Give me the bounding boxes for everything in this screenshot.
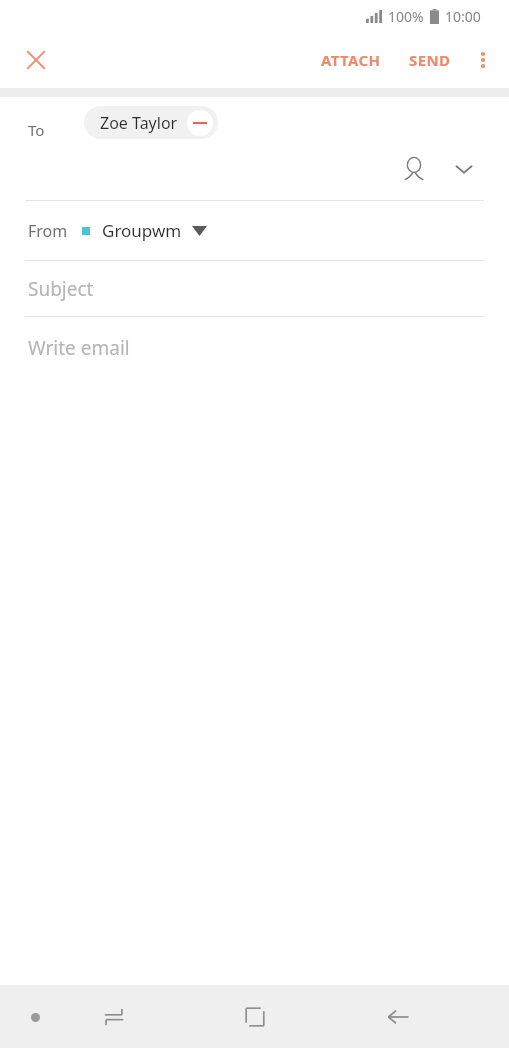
- button[interactable]: Recent apps: [88, 991, 140, 1043]
- staticText: ATTACH: [321, 50, 381, 70]
- staticText: Subject: [28, 276, 94, 302]
- staticText: From: [28, 220, 68, 242]
- staticText: Zoe Taylor: [100, 112, 178, 134]
- button[interactable]: Remove Zoe Taylor: [187, 110, 213, 136]
- button[interactable]: Expand recipients: [442, 147, 486, 191]
- button[interactable]: To: [0, 97, 509, 200]
- button[interactable]: Navigation handle: [18, 1000, 52, 1034]
- staticText: Groupwm: [102, 219, 182, 242]
- button[interactable]: SEND: [399, 40, 461, 80]
- button[interactable]: ATTACH: [311, 40, 391, 80]
- staticText: SEND: [409, 50, 451, 70]
- button[interactable]: Subject: [0, 261, 509, 316]
- button[interactable]: More options: [461, 38, 505, 82]
- staticText: 100%: [388, 7, 424, 26]
- button[interactable]: Close: [12, 36, 60, 84]
- button[interactable]: Back: [372, 991, 424, 1043]
- staticText: Write email: [28, 335, 130, 361]
- button[interactable]: Add contact: [392, 147, 436, 191]
- button[interactable]: Zoe Taylor: [84, 106, 218, 139]
- button[interactable]: Home: [229, 991, 281, 1043]
- staticText: 10:00: [445, 7, 481, 26]
- staticText: To: [28, 120, 45, 140]
- button[interactable]: From: [0, 201, 509, 260]
